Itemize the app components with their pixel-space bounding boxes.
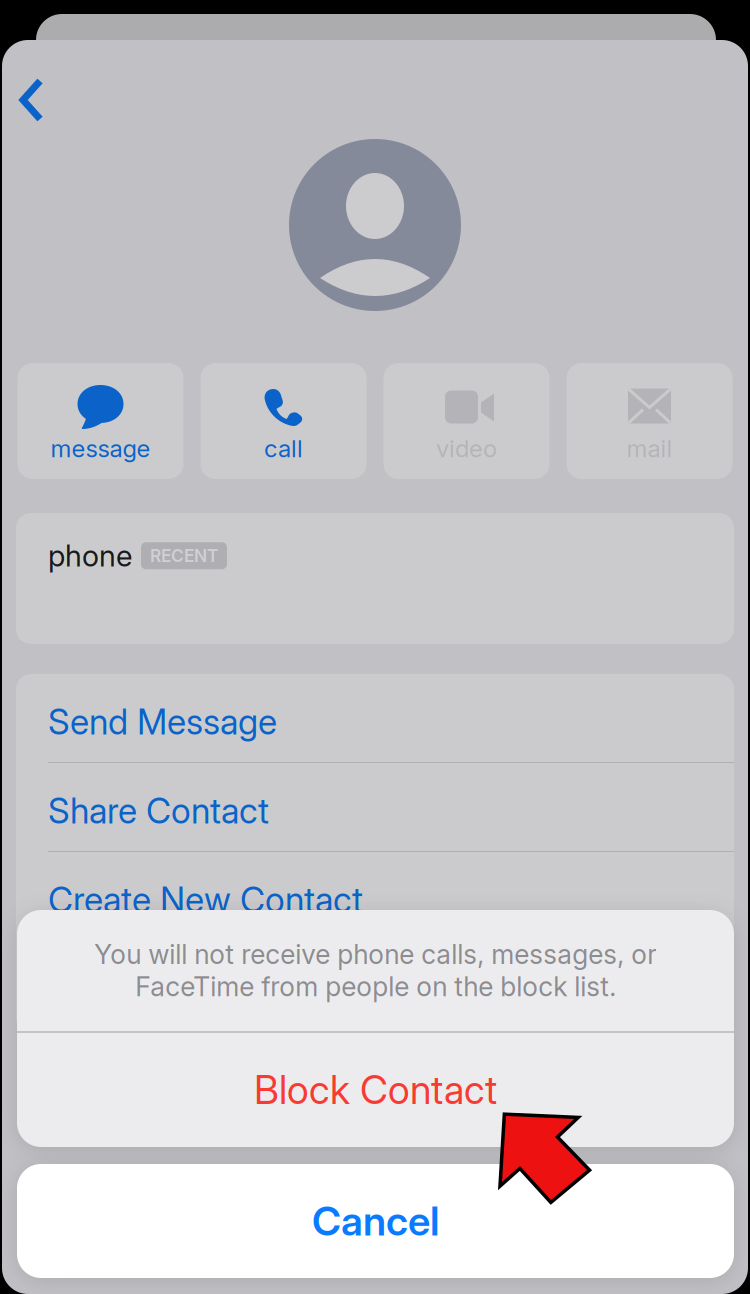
button[interactable]: call <box>200 363 366 479</box>
staticText: mail <box>626 434 672 463</box>
staticText: Create New Contact <box>48 879 363 921</box>
button[interactable]: Cancel <box>17 1164 734 1278</box>
button[interactable]: Send Message <box>16 674 734 762</box>
staticText: You will not receive phone calls, messag… <box>94 938 657 1003</box>
staticText: Cancel <box>312 1197 439 1245</box>
button[interactable]: video <box>383 363 549 479</box>
staticText: Share Contact <box>48 790 269 832</box>
staticText: message <box>50 434 150 463</box>
button[interactable]: Block Contact <box>17 1033 734 1147</box>
staticText: call <box>264 434 303 463</box>
staticText: video <box>436 434 497 463</box>
staticText: Block Contact <box>254 1067 497 1113</box>
button[interactable]: Back <box>2 56 66 134</box>
staticText: phone <box>48 538 132 573</box>
staticText: Add to Existing Contact <box>48 968 413 1010</box>
button[interactable]: Add to Existing Contact <box>16 941 734 1029</box>
button[interactable]: Share Contact <box>16 763 734 851</box>
button[interactable]: mail <box>566 363 732 479</box>
staticText: Send Message <box>48 701 277 743</box>
staticText: RECENT <box>150 545 218 566</box>
button[interactable]: Create New Contact <box>16 852 734 940</box>
button[interactable]: message <box>17 363 183 479</box>
